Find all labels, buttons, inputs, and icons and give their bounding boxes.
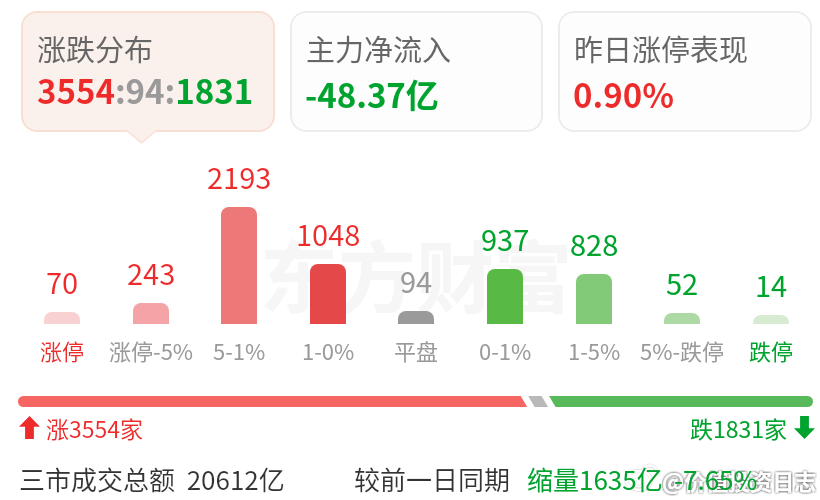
staticText: 3554:94:1831 — [37, 66, 254, 114]
staticText: @价值投资日志 — [660, 462, 815, 494]
staticText: -48.37亿 — [305, 70, 439, 118]
staticText: @价值投资日志 — [660, 463, 815, 495]
button[interactable]: 主力净流入 — [290, 11, 543, 132]
staticText: @价值投资日志 — [664, 462, 819, 494]
staticText: @价值投资日志 — [663, 464, 818, 496]
staticText: 涨停-5% — [109, 334, 194, 366]
staticText: @价值投资日志 — [661, 462, 816, 494]
staticText: -7.65% — [674, 460, 758, 498]
staticText: @价值投资日志 — [660, 464, 815, 496]
staticText: 1-5% — [568, 334, 621, 366]
staticText: @价值投资日志 — [664, 464, 819, 496]
staticText: 主力净流入 — [306, 27, 452, 69]
staticText: @价值投资日志 — [664, 465, 819, 497]
staticText: 828 — [570, 222, 619, 264]
staticText: 52 — [666, 261, 699, 303]
staticText: @价值投资日志 — [663, 463, 818, 495]
staticText: @价值投资日志 — [662, 462, 817, 494]
staticText: 14 — [755, 263, 788, 305]
button[interactable]: 昨日涨停表现 — [558, 11, 812, 132]
other: Declining — [794, 416, 815, 439]
button[interactable]: Advancing — [19, 411, 144, 444]
staticText: 1-0% — [302, 334, 355, 366]
staticText: 243 — [127, 251, 176, 293]
staticText: @价值投资日志 — [663, 462, 818, 494]
staticText: @价值投资日志 — [664, 463, 819, 495]
staticText: @价值投资日志 — [661, 464, 816, 496]
staticText: 三市成交总额 20612亿 — [19, 460, 285, 498]
staticText: @价值投资日志 — [660, 465, 815, 497]
staticText: 0.90% — [573, 70, 674, 118]
staticText: @价值投资日志 — [662, 465, 817, 497]
staticText: @价值投资日志 — [661, 466, 816, 498]
button[interactable]: 涨跌分布 — [21, 11, 275, 132]
staticText: @价值投资日志 — [662, 463, 817, 495]
staticText: 5%-跌停 — [640, 334, 725, 366]
staticText: @价值投资日志 — [661, 463, 816, 495]
staticText: @价值投资日志 — [662, 464, 817, 496]
staticText: 937 — [481, 217, 530, 259]
staticText: 2193 — [207, 155, 272, 197]
staticText: 缩量1635亿 — [527, 460, 663, 498]
staticText: 东方财富 — [260, 217, 573, 330]
staticText: 平盘 — [394, 334, 439, 366]
button[interactable]: 跌1831家 — [690, 411, 815, 444]
staticText: 昨日涨停表现 — [574, 27, 749, 69]
staticText: 较前一日同期 — [354, 460, 511, 498]
staticText: @价值投资日志 — [664, 466, 819, 498]
staticText: 70 — [46, 260, 79, 302]
staticText: @价值投资日志 — [662, 466, 817, 498]
staticText: 涨停 — [40, 334, 85, 366]
staticText: 跌1831家 — [690, 411, 788, 444]
staticText: 涨3554家 — [46, 411, 144, 444]
staticText: 94 — [400, 259, 433, 301]
staticText: 跌停 — [749, 334, 794, 366]
staticText: 5-1% — [213, 334, 266, 366]
staticText: @价值投资日志 — [663, 465, 818, 497]
staticText: @价值投资日志 — [660, 466, 815, 498]
other: Advancing — [19, 416, 40, 439]
staticText: @价值投资日志 — [661, 465, 816, 497]
staticText: 涨跌分布 — [37, 27, 154, 69]
staticText: 1048 — [296, 212, 361, 254]
staticText: @价值投资日志 — [663, 466, 818, 498]
staticText: 0-1% — [479, 334, 532, 366]
